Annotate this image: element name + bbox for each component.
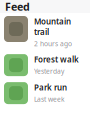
staticText: Yesterday [34,67,64,76]
button[interactable]: Mountain trail [0,13,90,51]
staticText: Feed [5,0,30,14]
staticText: Forest walk [34,54,79,65]
staticText: Last week [34,95,65,104]
staticText: Mountain trail [34,16,71,37]
staticText: Park run [34,82,67,93]
staticText: 2 hours ago [34,39,72,48]
button[interactable]: Forest walk [0,51,90,79]
button[interactable]: Park run [0,79,90,107]
